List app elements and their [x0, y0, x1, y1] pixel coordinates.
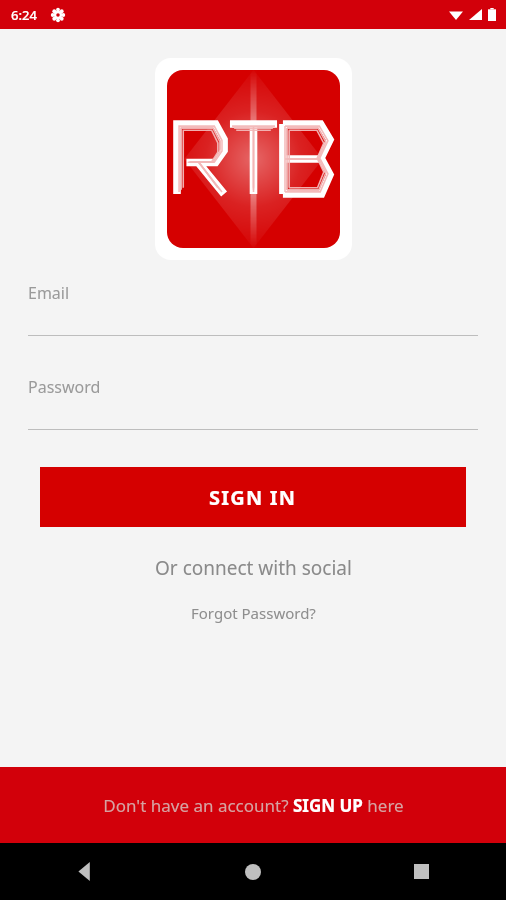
staticText: 6:24 [11, 6, 37, 24]
staticText: Forgot Password? [191, 603, 316, 623]
staticText: Password [28, 376, 101, 398]
button[interactable]: Email [28, 282, 478, 336]
button[interactable]: Recent apps [337, 864, 506, 879]
button[interactable]: Home [168, 864, 337, 880]
button[interactable]: Back [0, 862, 168, 881]
button[interactable]: Password [28, 376, 478, 430]
staticText: Email [28, 282, 70, 304]
button[interactable]: SIGN IN [40, 467, 466, 527]
other: Settings [51, 8, 65, 22]
staticText: SIGN IN [209, 484, 297, 511]
button[interactable]: Don't have an account? SIGN UP here [0, 767, 506, 843]
button[interactable]: Forgot Password? [0, 603, 506, 623]
button[interactable]: Or connect with social [0, 555, 506, 581]
staticText: Don't have an account? SIGN UP here [103, 794, 404, 817]
staticText: Or connect with social [155, 555, 352, 581]
